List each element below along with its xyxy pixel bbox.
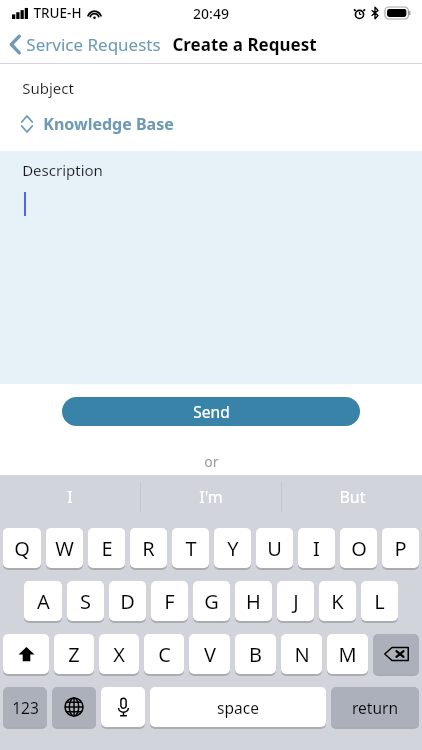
staticText: X: [113, 641, 125, 668]
button[interactable]: F: [151, 581, 188, 623]
staticText: I: [67, 486, 73, 508]
button[interactable]: M: [327, 634, 368, 676]
staticText: I'm: [199, 486, 223, 508]
staticText: F: [164, 588, 175, 615]
staticText: Y: [227, 535, 239, 562]
button[interactable]: Switch keyboard: [52, 687, 96, 729]
staticText: return: [352, 697, 398, 718]
staticText: R: [142, 535, 155, 562]
staticText: S: [80, 588, 91, 615]
staticText: Send: [193, 401, 230, 422]
button[interactable]: L: [361, 581, 398, 623]
button[interactable]: Shift: [3, 634, 49, 676]
button[interactable]: Service Requests: [10, 33, 167, 56]
staticText: Z: [68, 641, 80, 668]
staticText: or: [204, 452, 219, 471]
button[interactable]: O: [340, 528, 377, 570]
button[interactable]: W: [46, 528, 83, 570]
staticText: Subject: [22, 78, 74, 98]
staticText: Description: [22, 160, 103, 180]
staticText: Create a Request: [172, 33, 317, 56]
staticText: 123: [12, 697, 39, 718]
button[interactable]: H: [235, 581, 272, 623]
staticText: B: [249, 641, 262, 668]
button[interactable]: Y: [214, 528, 251, 570]
staticText: V: [204, 641, 216, 668]
button[interactable]: Q: [3, 528, 41, 570]
button[interactable]: C: [144, 634, 184, 676]
staticText: U: [267, 535, 282, 562]
button[interactable]: X: [99, 634, 139, 676]
button[interactable]: space: [150, 687, 326, 729]
staticText: Q: [14, 535, 30, 562]
button[interactable]: I: [298, 528, 335, 570]
button[interactable]: 123: [3, 687, 47, 729]
button[interactable]: T: [172, 528, 209, 570]
button[interactable]: B: [235, 634, 276, 676]
button[interactable]: G: [193, 581, 230, 623]
staticText: A: [37, 588, 50, 615]
button[interactable]: Backspace: [373, 634, 419, 676]
staticText: P: [394, 535, 407, 562]
button[interactable]: But: [282, 475, 422, 518]
staticText: K: [331, 588, 344, 615]
staticText: E: [101, 535, 113, 562]
button[interactable]: K: [319, 581, 356, 623]
staticText: O: [351, 535, 367, 562]
staticText: L: [374, 588, 385, 615]
button[interactable]: J: [277, 581, 314, 623]
button[interactable]: V: [189, 634, 230, 676]
button[interactable]: N: [281, 634, 322, 676]
button[interactable]: U: [256, 528, 293, 570]
staticText: D: [120, 588, 135, 615]
staticText: Service Requests: [26, 33, 161, 56]
staticText: G: [204, 588, 219, 615]
staticText: M: [338, 641, 357, 668]
staticText: I: [313, 535, 320, 562]
button[interactable]: P: [382, 528, 419, 570]
staticText: But: [339, 486, 366, 508]
button[interactable]: A: [24, 581, 62, 623]
button[interactable]: D: [109, 581, 146, 623]
button[interactable]: return: [331, 687, 419, 729]
staticText: T: [185, 535, 197, 562]
button[interactable]: Knowledge Base: [20, 111, 184, 137]
staticText: C: [158, 641, 171, 668]
button[interactable]: S: [67, 581, 104, 623]
button[interactable]: Z: [54, 634, 94, 676]
staticText: N: [294, 641, 310, 668]
staticText: 20:49: [193, 4, 229, 23]
staticText: W: [55, 535, 74, 562]
staticText: Knowledge Base: [43, 113, 174, 135]
staticText: TRUE-H: [33, 4, 82, 22]
button[interactable]: R: [130, 528, 167, 570]
staticText: H: [246, 588, 261, 615]
button[interactable]: Send: [62, 397, 360, 426]
staticText: J: [293, 588, 299, 615]
button[interactable]: I'm: [141, 475, 281, 518]
staticText: space: [217, 697, 259, 718]
button[interactable]: Dictate: [101, 687, 145, 729]
button[interactable]: E: [88, 528, 125, 570]
